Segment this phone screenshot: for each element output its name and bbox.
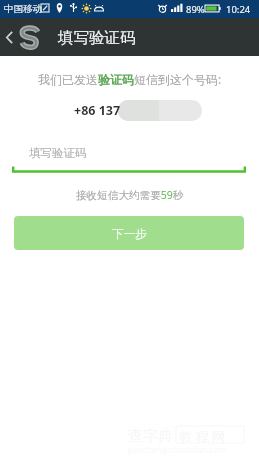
staticText: 中国移动 [4, 3, 42, 15]
staticText: 89% [186, 3, 205, 16]
staticText: 填写验证码 [58, 28, 136, 48]
staticText: 下一步 [112, 227, 147, 241]
staticText: 接收短信大约需要59秒 [76, 188, 184, 202]
staticText: +86 137 [74, 102, 121, 119]
button[interactable]: 下一步 [14, 216, 244, 250]
staticText: 10:24 [226, 3, 251, 16]
staticText: 查字典 [128, 427, 173, 446]
staticText: 教 程 网 [179, 427, 225, 444]
button[interactable]: Back [6, 18, 39, 56]
staticText: 我们已发送验证码短信到这个号码: [38, 71, 222, 87]
staticText: 填写验证码 [29, 146, 87, 160]
